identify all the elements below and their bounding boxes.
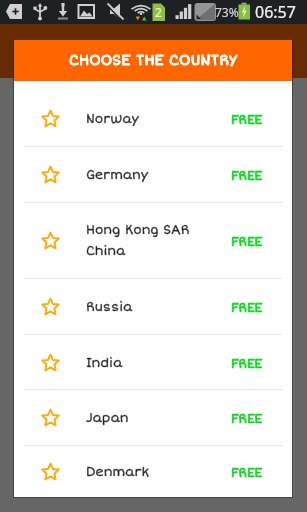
staticText: FREE xyxy=(231,466,263,481)
staticText: FREE xyxy=(231,357,263,372)
staticText: FREE xyxy=(231,466,263,481)
other: Favourite xyxy=(41,231,60,250)
other: Favourite xyxy=(41,462,60,481)
staticText: FREE xyxy=(231,301,263,316)
button[interactable]: Favourite xyxy=(14,91,292,146)
staticText: 2 xyxy=(155,4,162,20)
button[interactable]: Favourite xyxy=(14,335,292,389)
staticText: CHOOSE THE COUNTRY xyxy=(69,52,238,69)
staticText: FREE xyxy=(231,235,263,250)
staticText: Norway xyxy=(86,111,139,126)
staticText: 06:57 xyxy=(255,1,296,23)
staticText: FREE xyxy=(231,412,263,427)
staticText: Russia xyxy=(86,299,133,314)
other: Favourite xyxy=(41,165,60,184)
button[interactable]: Favourite xyxy=(14,279,292,334)
staticText: FREE xyxy=(231,235,263,250)
staticText: Norway xyxy=(86,111,139,126)
staticText: FREE xyxy=(231,301,263,316)
other: Favourite xyxy=(41,297,60,316)
button[interactable]: Favourite xyxy=(14,446,292,497)
staticText: Japan xyxy=(86,410,129,425)
button[interactable]: Favourite xyxy=(14,147,292,202)
staticText: FREE xyxy=(231,113,263,128)
staticText: Germany xyxy=(86,167,149,182)
staticText: Hong Kong SAR China xyxy=(86,222,204,259)
staticText: Germany xyxy=(86,167,149,182)
other: Favourite xyxy=(41,109,60,128)
staticText: Russia xyxy=(86,299,133,314)
staticText: FREE xyxy=(231,412,263,427)
staticText: India xyxy=(86,355,123,370)
button[interactable]: CHOOSE THE COUNTRY xyxy=(14,40,292,81)
staticText: 73% xyxy=(215,4,239,20)
staticText: Denmark xyxy=(86,464,150,479)
other: Favourite xyxy=(41,353,60,372)
button[interactable]: Favourite xyxy=(14,203,292,278)
other: Favourite xyxy=(41,408,60,427)
staticText: FREE xyxy=(231,169,263,184)
staticText: Japan xyxy=(86,410,129,425)
staticText: FREE xyxy=(231,169,263,184)
button[interactable]: Favourite xyxy=(14,390,292,445)
staticText: CHOOSE THE COUNTRY xyxy=(69,52,238,69)
staticText: FREE xyxy=(231,113,263,128)
staticText: FREE xyxy=(231,357,263,372)
staticText: Denmark xyxy=(86,464,150,479)
staticText: Hong Kong SAR China xyxy=(86,222,204,259)
staticText: India xyxy=(86,355,123,370)
